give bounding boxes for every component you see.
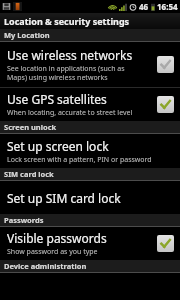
staticText: Set up screen lock bbox=[7, 138, 109, 154]
staticText: Use wireless networks bbox=[7, 47, 133, 63]
staticText: Visible passwords bbox=[7, 230, 107, 246]
staticText: Lock screen with a pattern, PIN or passw… bbox=[7, 155, 152, 165]
staticText: Passwords bbox=[4, 215, 44, 225]
button[interactable]: Use wireless networks bbox=[0, 42, 180, 87]
staticText: My Location bbox=[4, 30, 50, 40]
button[interactable]: Visible passwords bbox=[0, 227, 180, 260]
staticText: SIM card lock bbox=[4, 169, 54, 179]
staticText: 46 bbox=[139, 1, 149, 12]
button[interactable]: Set up SIM card lock bbox=[0, 181, 180, 214]
staticText: 16:54 bbox=[157, 1, 178, 12]
button[interactable]: Use GPS satellites bbox=[0, 88, 180, 121]
staticText: Set up SIM card lock bbox=[7, 190, 121, 206]
button[interactable]: Checked bbox=[157, 96, 174, 113]
staticText: Show password as you type bbox=[7, 247, 98, 257]
staticText: When locating, accurate to street level bbox=[7, 108, 133, 118]
staticText: See location in applications (such as Ma… bbox=[7, 64, 125, 82]
button[interactable]: Unchecked bbox=[157, 56, 174, 73]
button[interactable]: Checked bbox=[157, 235, 174, 252]
staticText: Screen unlock bbox=[4, 122, 57, 132]
staticText: Use GPS satellites bbox=[7, 91, 107, 107]
staticText: Location & security settings bbox=[4, 15, 130, 27]
staticText: Device administration bbox=[4, 261, 87, 271]
button[interactable]: Set up screen lock bbox=[0, 134, 180, 168]
